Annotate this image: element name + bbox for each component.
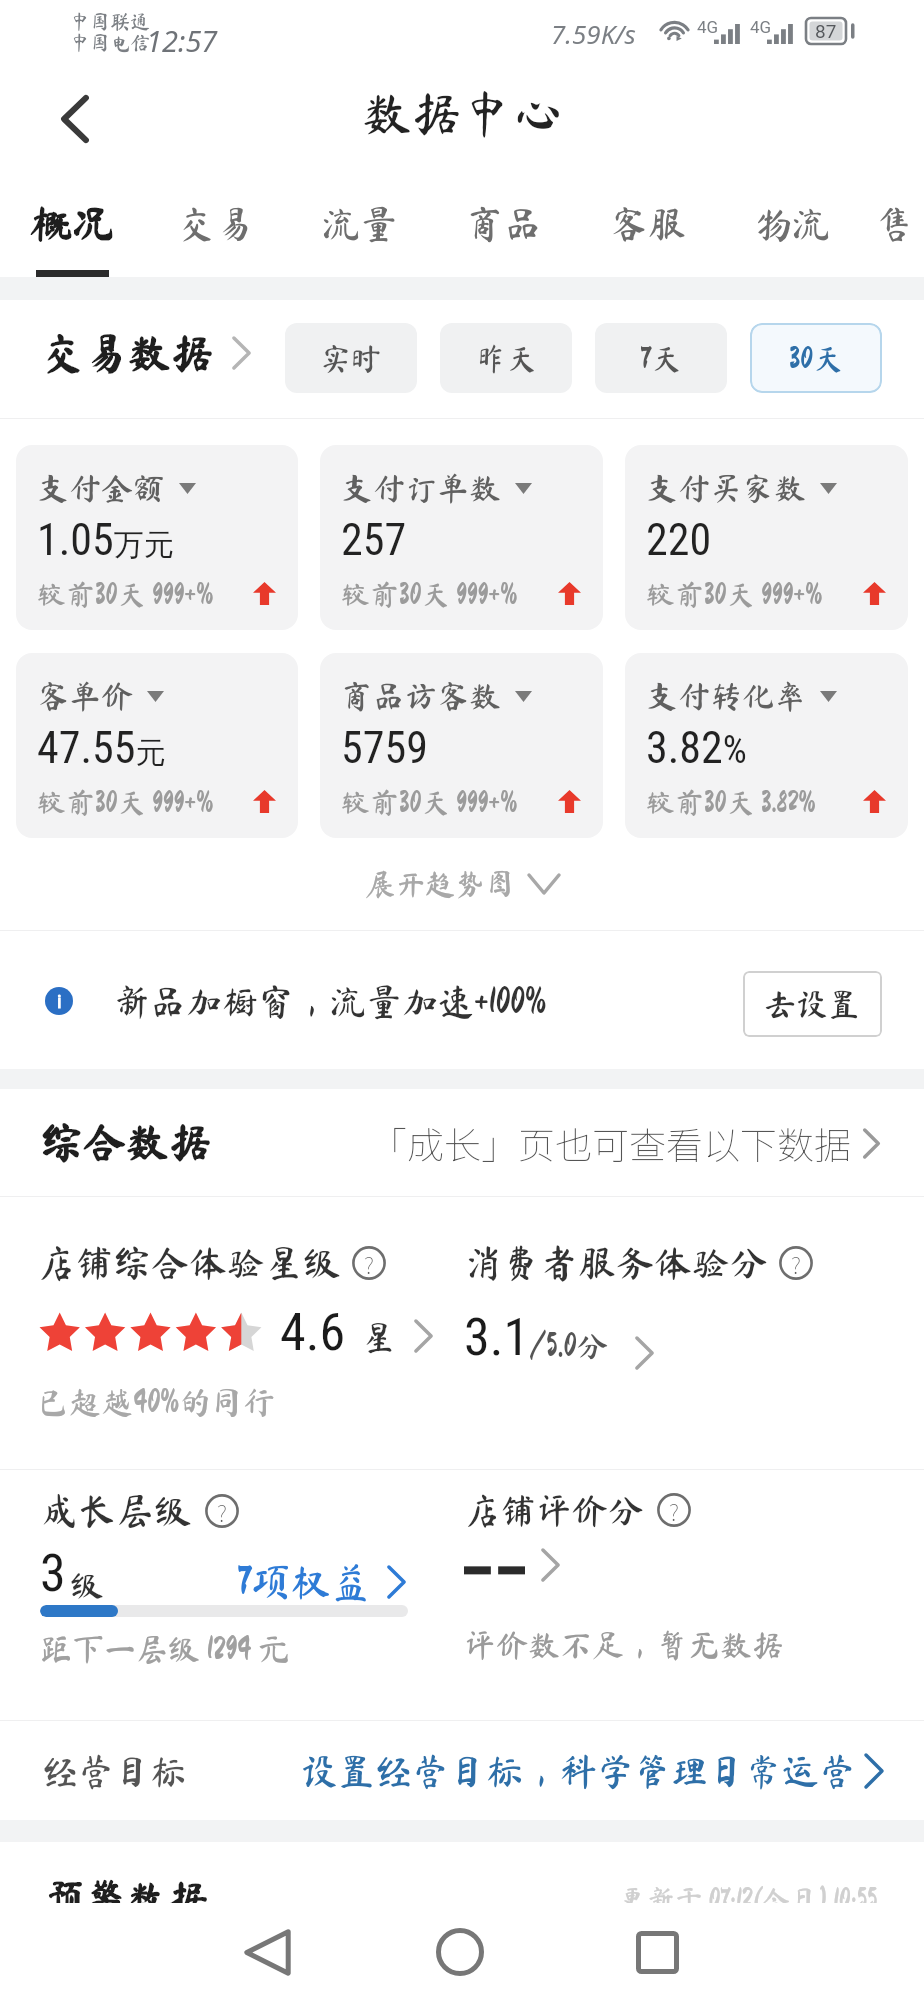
- staticText: 1.05万元: [37, 514, 174, 566]
- button[interactable]: 商品: [432, 160, 576, 277]
- button[interactable]: 7项权益: [237, 1562, 406, 1604]
- button[interactable]: 3.1: [464, 1307, 654, 1368]
- staticText: 昨天: [475, 343, 537, 374]
- button[interactable]: 去设置: [743, 971, 882, 1037]
- staticText: 较前30天 3.82%: [646, 787, 816, 816]
- staticText: 「成长」页也可查看以下数据: [370, 1116, 851, 1170]
- button[interactable]: 交易数据: [42, 331, 251, 374]
- staticText: 交易数据: [42, 331, 214, 374]
- staticText: 店铺综合体验星级: [37, 1244, 342, 1282]
- button[interactable]: 主页: [415, 1907, 505, 1997]
- staticText: 物流: [754, 205, 831, 243]
- staticText: 7天: [640, 343, 682, 374]
- staticText: 中国联通: [70, 11, 150, 31]
- button[interactable]: 交易: [144, 160, 288, 277]
- staticText: 客单价: [37, 680, 134, 712]
- staticText: 较前30天 999+%: [341, 787, 518, 816]
- staticText: 设置经营目标，科学管理日常运营: [301, 1752, 856, 1789]
- button[interactable]: 支付买家数: [625, 445, 908, 630]
- button[interactable]: 概况: [0, 160, 144, 277]
- button[interactable]: 商品访客数: [320, 653, 603, 838]
- staticText: 220: [646, 514, 712, 566]
- staticText: 3.1: [464, 1307, 530, 1368]
- staticText: 实时: [320, 343, 382, 374]
- staticText: /5.0分: [530, 1330, 609, 1362]
- staticText: i: [57, 990, 62, 1012]
- staticText: 评价数不足，暂无数据: [464, 1629, 785, 1661]
- staticText: 30天: [789, 343, 844, 374]
- staticText: 流量: [322, 205, 399, 243]
- button[interactable]: 支付金额: [16, 445, 298, 630]
- button[interactable]: 7天: [595, 323, 727, 393]
- button[interactable]: 返回: [40, 84, 110, 154]
- staticText: 已超越40%的同行: [37, 1386, 276, 1418]
- staticText: 级: [70, 1568, 104, 1602]
- staticText: ?: [669, 1494, 680, 1527]
- button[interactable]: 30天: [750, 323, 882, 393]
- staticText: 交易: [178, 205, 255, 243]
- staticText: ?: [364, 1247, 375, 1280]
- button[interactable]: 流量: [288, 160, 432, 277]
- staticText: 4.6: [280, 1302, 346, 1363]
- button[interactable]: 展开趋势图: [357, 861, 567, 907]
- button[interactable]: 返回: [222, 1907, 312, 1997]
- staticText: 87: [815, 20, 837, 42]
- staticText: 新品加橱窗，流量加速+100%: [114, 983, 547, 1019]
- button[interactable]: 支付转化率: [625, 653, 908, 838]
- staticText: 商品: [466, 205, 543, 243]
- staticText: 距下一层级 1294 元: [40, 1633, 290, 1665]
- staticText: 成长层级: [40, 1492, 193, 1530]
- staticText: 3.82%: [646, 722, 747, 774]
- staticText: 支付转化率: [646, 680, 807, 712]
- button[interactable]: 支付订单数: [320, 445, 603, 630]
- staticText: 12:57: [146, 21, 218, 60]
- staticText: 3: [40, 1543, 66, 1604]
- button[interactable]: 客服: [576, 160, 720, 277]
- staticText: 支付金额: [37, 472, 166, 504]
- button[interactable]: 售: [864, 160, 924, 277]
- button[interactable]: [464, 1550, 560, 1584]
- staticText: 7.59K/s: [551, 16, 636, 51]
- staticText: 更新于 07:12(今日) 10:55: [619, 1885, 878, 1913]
- staticText: 商品访客数: [341, 680, 502, 712]
- staticText: 售: [875, 205, 914, 243]
- staticText: 去设置: [764, 988, 861, 1020]
- button[interactable]: 昨天: [440, 323, 572, 393]
- staticText: 较前30天 999+%: [37, 787, 214, 816]
- button[interactable]: 设置经营目标，科学管理日常运营: [301, 1752, 884, 1789]
- staticText: 预警数据: [45, 1878, 209, 1919]
- staticText: 店铺评价分: [464, 1492, 645, 1528]
- staticText: 较前30天 999+%: [341, 579, 518, 608]
- staticText: 支付买家数: [646, 472, 807, 504]
- staticText: 数据中心: [362, 88, 562, 138]
- staticText: 较前30天 999+%: [646, 579, 823, 608]
- staticText: 5759: [341, 722, 428, 774]
- staticText: 中国电信: [70, 32, 150, 52]
- staticText: 较前30天 999+%: [37, 579, 214, 608]
- button[interactable]: 最近任务: [612, 1907, 702, 1997]
- staticText: 概况: [30, 202, 115, 244]
- staticText: 综合数据: [40, 1120, 212, 1163]
- staticText: 4G: [697, 17, 719, 37]
- staticText: 消费者服务体验分: [464, 1244, 769, 1282]
- staticText: 展开趋势图: [365, 869, 515, 899]
- button[interactable]: 实时: [285, 323, 417, 393]
- button[interactable]: 客单价: [16, 653, 298, 838]
- button[interactable]: 物流: [720, 160, 864, 277]
- staticText: 257: [341, 514, 407, 566]
- staticText: 星: [362, 1320, 396, 1354]
- staticText: ?: [791, 1247, 802, 1280]
- staticText: 47.55元: [37, 722, 166, 774]
- staticText: 支付订单数: [341, 472, 502, 504]
- staticText: 经营目标: [42, 1753, 187, 1789]
- staticText: ?: [217, 1495, 228, 1528]
- staticText: 客服: [610, 205, 687, 243]
- staticText: 4G: [750, 17, 772, 37]
- button[interactable]: 4.6: [37, 1302, 433, 1363]
- staticText: 7项权益: [237, 1562, 371, 1602]
- button[interactable]: 「成长」页也可查看以下数据: [370, 1116, 880, 1170]
